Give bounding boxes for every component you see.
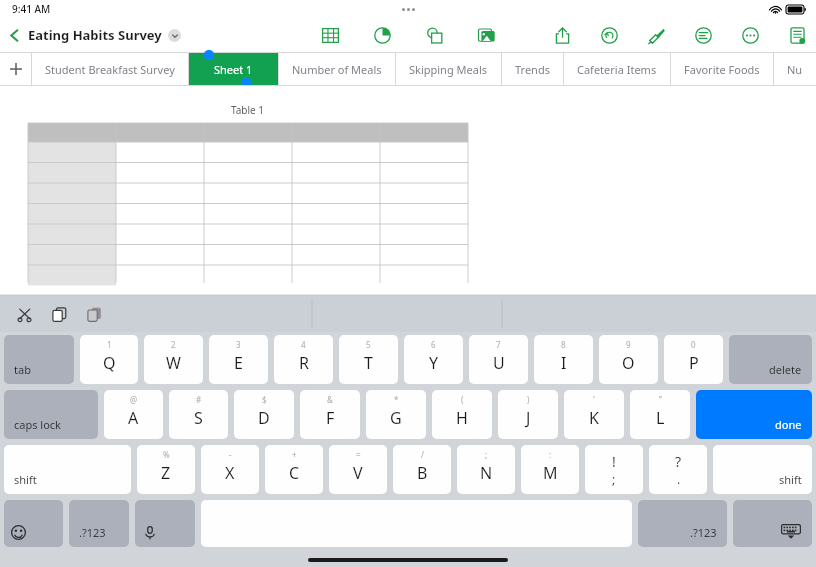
staticText: Q <box>103 352 116 374</box>
staticText: R <box>299 352 309 374</box>
staticText: W <box>166 352 181 374</box>
button[interactable]: tab <box>4 335 74 384</box>
button[interactable]: done <box>696 390 812 439</box>
button[interactable]: / <box>393 445 451 494</box>
button[interactable]: ( <box>432 390 492 439</box>
button[interactable]: Share <box>549 22 575 48</box>
staticText: # <box>196 394 202 405</box>
button[interactable]: Dictation <box>135 500 195 547</box>
button[interactable]: Nutrition <box>774 53 816 85</box>
staticText: 0 <box>691 339 696 350</box>
button[interactable]: 2 <box>144 335 203 384</box>
button[interactable]: Cut <box>11 301 37 327</box>
button[interactable]: Insert shape <box>421 22 447 48</box>
button[interactable]: 7 <box>469 335 528 384</box>
button[interactable]: shift <box>4 445 131 494</box>
button[interactable]: ' <box>564 390 624 439</box>
staticText: G <box>390 407 402 429</box>
button[interactable]: delete <box>729 335 812 384</box>
staticText: S <box>194 407 203 429</box>
button[interactable]: 1 <box>80 335 138 384</box>
button[interactable]: Back <box>0 21 28 49</box>
staticText: 2 <box>171 339 176 350</box>
button[interactable]: Document options <box>168 29 181 42</box>
button[interactable]: Insert table <box>317 22 343 48</box>
button[interactable]: 4 <box>274 335 333 384</box>
button[interactable]: Document setup <box>784 22 810 48</box>
staticText: D <box>258 407 270 429</box>
button[interactable]: $ <box>234 390 294 439</box>
staticText: 5 <box>366 339 371 350</box>
staticText: Sheet 1 <box>214 62 253 77</box>
button[interactable]: @ <box>104 390 163 439</box>
staticText: M <box>543 462 558 484</box>
button[interactable]: Skipping Meals <box>396 53 501 85</box>
button[interactable]: Emoji <box>4 500 63 547</box>
button[interactable]: Format <box>643 22 669 48</box>
staticText: P <box>689 352 699 374</box>
staticText: ” <box>659 394 662 405</box>
button[interactable]: 9 <box>599 335 658 384</box>
staticText: H <box>456 407 468 429</box>
button[interactable]: Hide keyboard <box>733 500 812 547</box>
staticText: & <box>327 394 333 405</box>
button[interactable]: Copy <box>46 301 72 327</box>
button[interactable]: Cafeteria Items <box>564 53 670 85</box>
button[interactable]: & <box>300 390 360 439</box>
button[interactable]: .?123 <box>638 500 727 547</box>
button[interactable]: ” <box>630 390 690 439</box>
button[interactable]: 8 <box>534 335 593 384</box>
button[interactable]: ) <box>498 390 558 439</box>
staticText: 7 <box>496 339 501 350</box>
staticText: J <box>526 407 531 429</box>
button[interactable]: Insert chart <box>369 22 395 48</box>
button[interactable]: Trends <box>502 53 563 85</box>
staticText: shift <box>14 472 37 487</box>
button[interactable]: # <box>169 390 228 439</box>
button[interactable]: Insert media <box>473 22 499 48</box>
button[interactable]: * <box>366 390 426 439</box>
staticText: Skipping Meals <box>409 62 488 77</box>
button[interactable]: + <box>265 445 323 494</box>
button[interactable]: ; <box>457 445 515 494</box>
staticText: ! <box>612 452 616 471</box>
staticText: ) <box>527 394 530 405</box>
staticText: .?123 <box>690 525 717 540</box>
button[interactable]: Sheet 1 <box>189 53 278 85</box>
button[interactable]: Undo <box>596 22 622 48</box>
button[interactable]: Favorite Foods <box>671 53 773 85</box>
staticText: Favorite Foods <box>684 62 760 77</box>
staticText: Trends <box>515 62 550 77</box>
button[interactable]: - <box>201 445 259 494</box>
button[interactable]: : <box>521 445 579 494</box>
button[interactable]: 5 <box>339 335 398 384</box>
button[interactable]: Eating Habits Survey <box>28 26 162 44</box>
button[interactable]: Number of Meals <box>279 53 395 85</box>
button[interactable]: 0 <box>664 335 723 384</box>
button[interactable]: ? <box>649 445 707 494</box>
button[interactable]: .?123 <box>69 500 129 547</box>
staticText: A <box>128 407 139 429</box>
button[interactable]: % <box>137 445 195 494</box>
staticText: C <box>289 462 300 484</box>
staticText: L <box>656 407 665 429</box>
staticText: % <box>163 449 170 460</box>
button[interactable]: Add sheet <box>0 53 31 85</box>
button[interactable]: Format options <box>690 22 716 48</box>
button[interactable]: = <box>329 445 387 494</box>
staticText: ; <box>612 471 616 487</box>
button[interactable]: 6 <box>404 335 463 384</box>
staticText: Table 1 <box>231 103 265 117</box>
button[interactable]: 3 <box>209 335 268 384</box>
staticText: 9:41 AM <box>12 2 51 16</box>
button[interactable]: ! <box>585 445 643 494</box>
button[interactable]: Student Breakfast Survey <box>32 53 188 85</box>
staticText: done <box>775 417 802 432</box>
button[interactable]: Paste <box>81 301 107 327</box>
staticText: 9 <box>626 339 631 350</box>
button[interactable]: caps lock <box>4 390 98 439</box>
button[interactable]: shift <box>713 445 812 494</box>
staticText: U <box>493 352 505 374</box>
button[interactable]: More <box>737 22 763 48</box>
